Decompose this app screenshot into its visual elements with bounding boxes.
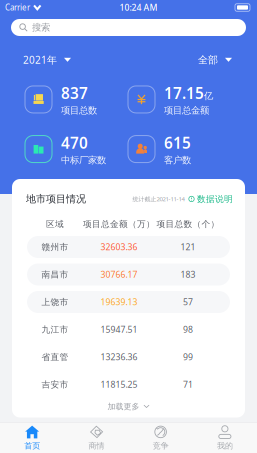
staticText: 首页: [24, 441, 40, 451]
staticText: 15947.51: [100, 324, 137, 335]
staticText: 837: [61, 83, 88, 103]
staticText: 商情: [88, 441, 104, 451]
button[interactable]: 837: [25, 83, 128, 116]
button[interactable]: 商情: [64, 423, 128, 453]
staticText: 30766.17: [100, 269, 137, 280]
button[interactable]: 全部: [194, 48, 236, 71]
staticText: 项目总金额（万）: [83, 218, 155, 229]
staticText: 57: [183, 296, 193, 308]
staticText: 183: [180, 269, 195, 280]
button[interactable]: 数据说明: [184, 193, 233, 204]
staticText: 区域: [46, 218, 64, 229]
staticText: 13236.36: [100, 351, 137, 363]
staticText: 121: [180, 241, 195, 253]
staticText: 10:24 AM: [119, 2, 157, 13]
button[interactable]: 竞争: [128, 423, 193, 453]
staticText: 亿: [204, 90, 213, 102]
staticText: 省直管: [41, 351, 68, 362]
staticText: 九江市: [41, 324, 68, 335]
staticText: 98: [183, 324, 193, 335]
staticText: Carrier: [5, 2, 30, 13]
staticText: 71: [183, 379, 193, 390]
staticText: 项目总金额: [164, 104, 209, 116]
staticText: 客户数: [164, 154, 191, 166]
staticText: 32603.36: [100, 241, 137, 253]
button[interactable]: 470: [25, 132, 128, 166]
button[interactable]: 2021年: [19, 48, 75, 72]
staticText: 数据说明: [197, 193, 233, 204]
staticText: 加载更多: [107, 401, 139, 412]
button[interactable]: 17.15: [128, 83, 231, 116]
button[interactable]: 搜索: [0, 15, 257, 36]
staticText: 我的: [217, 441, 233, 451]
staticText: 项目总数（个）: [156, 218, 219, 229]
staticText: 竞争: [153, 441, 169, 451]
staticText: 2021年: [23, 53, 57, 67]
staticText: 615: [164, 132, 191, 153]
staticText: 搜索: [32, 22, 50, 33]
staticText: 上饶市: [41, 296, 68, 307]
staticText: 南昌市: [41, 269, 68, 280]
staticText: 吉安市: [41, 379, 68, 390]
button[interactable]: 首页: [0, 423, 64, 453]
button[interactable]: 加载更多: [12, 395, 245, 417]
staticText: 全部: [198, 53, 218, 66]
staticText: 统计截止2021-11-14: [132, 195, 184, 203]
button[interactable]: 615: [128, 132, 231, 166]
staticText: 中标厂家数: [61, 154, 106, 166]
staticText: 19639.13: [100, 296, 137, 308]
button[interactable]: 我的: [193, 423, 257, 453]
staticText: 赣州市: [41, 241, 68, 252]
staticText: 项目总数: [61, 104, 97, 116]
staticText: 17.15: [164, 83, 204, 103]
staticText: 11815.25: [100, 379, 137, 390]
staticText: 地市项目情况: [26, 193, 86, 205]
staticText: 99: [183, 351, 193, 363]
staticText: 470: [61, 132, 88, 153]
